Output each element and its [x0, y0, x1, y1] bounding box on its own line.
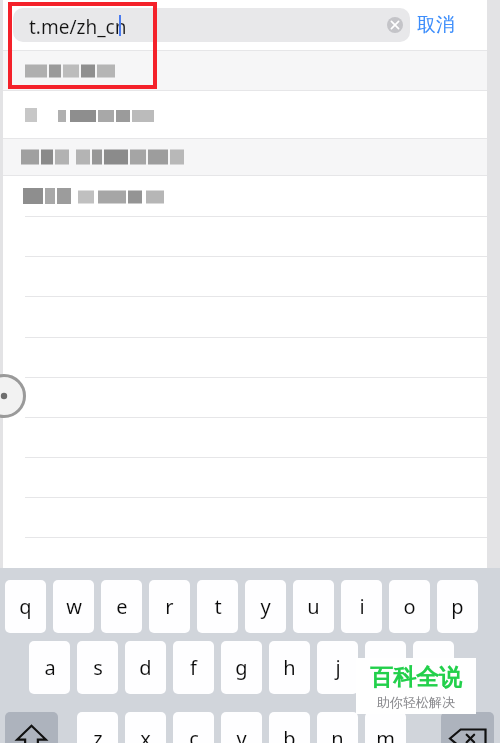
staticText: c	[189, 725, 199, 743]
staticText: t	[214, 593, 222, 620]
button[interactable]: m	[365, 712, 406, 743]
staticText: h	[283, 654, 296, 681]
button[interactable]	[3, 91, 487, 138]
button[interactable]: y	[245, 580, 286, 633]
button[interactable]	[3, 51, 487, 90]
staticText: 取消	[417, 13, 455, 37]
button[interactable]: a	[29, 641, 70, 694]
button[interactable]: h	[269, 641, 310, 694]
button[interactable]: b	[269, 712, 310, 743]
staticText: w	[66, 593, 82, 620]
staticText: e	[116, 593, 128, 620]
staticText: 助你轻松解决	[377, 694, 455, 710]
staticText: p	[451, 593, 464, 620]
staticText: t.me/zh_cn	[29, 14, 127, 40]
button[interactable]	[3, 176, 487, 216]
button[interactable]: d	[125, 641, 166, 694]
button[interactable]: Backspace	[441, 712, 494, 743]
staticText: j	[335, 654, 341, 681]
button[interactable]: v	[221, 712, 262, 743]
staticText: l	[431, 654, 437, 681]
staticText: i	[359, 593, 365, 620]
staticText: d	[139, 654, 152, 681]
staticText: o	[403, 593, 416, 620]
button[interactable]: q	[5, 580, 46, 633]
button[interactable]: p	[437, 580, 478, 633]
staticText: y	[260, 593, 271, 620]
button[interactable]: t	[197, 580, 238, 633]
staticText: b	[283, 725, 296, 743]
button[interactable]: 取消	[417, 6, 455, 44]
staticText: f	[190, 654, 197, 681]
staticText: z	[93, 725, 103, 743]
staticText: g	[235, 654, 248, 681]
button[interactable]: c	[173, 712, 214, 743]
button[interactable]: f	[173, 641, 214, 694]
button[interactable]: Clear text	[387, 17, 403, 33]
button[interactable]: n	[317, 712, 358, 743]
button[interactable]: g	[221, 641, 262, 694]
staticText: a	[44, 654, 56, 681]
button[interactable]: w	[53, 580, 94, 633]
button[interactable]: s	[77, 641, 118, 694]
staticText: q	[19, 593, 32, 620]
staticText: k	[380, 654, 391, 681]
button[interactable]: u	[293, 580, 334, 633]
button[interactable]: x	[125, 712, 166, 743]
button[interactable]: e	[101, 580, 142, 633]
staticText: m	[376, 725, 395, 743]
staticText: 百科全说	[370, 663, 462, 692]
staticText: v	[236, 725, 247, 743]
staticText: x	[140, 725, 151, 743]
staticText: s	[93, 654, 103, 681]
button[interactable]: Shift	[5, 712, 58, 743]
button[interactable]: o	[389, 580, 430, 633]
button[interactable]: k	[365, 641, 406, 694]
button[interactable]: r	[149, 580, 190, 633]
button[interactable]: i	[341, 580, 382, 633]
button[interactable]	[3, 139, 487, 175]
staticText: n	[331, 725, 344, 743]
button[interactable]: t.me/zh_cn	[13, 8, 410, 42]
staticText: u	[307, 593, 320, 620]
button[interactable]: Assistive touch	[0, 374, 26, 418]
staticText: r	[165, 593, 174, 620]
button[interactable]: j	[317, 641, 358, 694]
button[interactable]: l	[413, 641, 454, 694]
button[interactable]: z	[77, 712, 118, 743]
